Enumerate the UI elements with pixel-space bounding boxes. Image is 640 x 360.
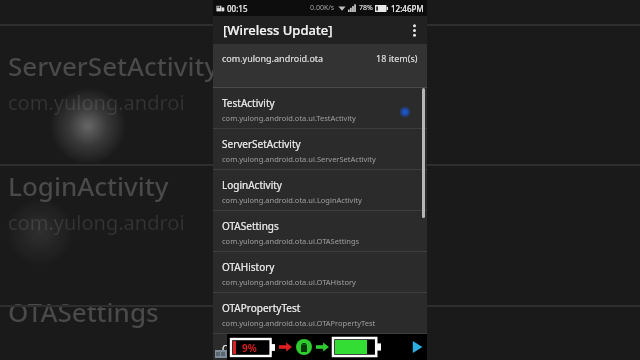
staticText: 00:15	[227, 3, 248, 14]
staticText: TestActivity	[222, 96, 275, 110]
staticText: OTASettings	[8, 294, 159, 329]
staticText: 9%	[242, 341, 257, 354]
staticText: OTAUpdateActivity	[222, 342, 309, 356]
staticText: com.yulong.android.ota.ui.ServerSetActiv…	[222, 154, 376, 164]
button[interactable]: OTASettings	[213, 211, 427, 251]
button[interactable]: OTAHistory	[213, 252, 427, 292]
staticText: 0.00K/s	[310, 3, 335, 13]
button[interactable]: 9%	[227, 334, 427, 360]
staticText: 12:46PM	[391, 3, 424, 14]
staticText: 18 item(s)	[376, 52, 418, 64]
button[interactable]: TestActivity	[213, 88, 427, 128]
staticText: 78%	[359, 3, 373, 13]
staticText: com.yulong.android.ota.ui.OTASettings	[222, 236, 360, 246]
button[interactable]: LoginActivity	[213, 170, 427, 210]
staticText: ServerSetActivity	[222, 137, 301, 151]
other: Play	[411, 341, 423, 353]
button[interactable]: ServerSetActivity	[213, 129, 427, 169]
staticText: com.yulong.android.ota.ui.LoginActivity	[222, 195, 362, 205]
button[interactable]: com.yulong.android.ota	[213, 44, 427, 88]
button[interactable]: More options	[401, 16, 427, 44]
staticText: com.yulong.android.ota.ui.OTAUpdate	[222, 359, 357, 360]
staticText: com.yulong.android.ota	[222, 52, 324, 64]
staticText: LoginActivity	[8, 168, 169, 203]
staticText: com.yulong.androi	[8, 209, 185, 236]
staticText: com.yulong.android.ota.ui.TestActivity	[222, 113, 356, 123]
staticText: com.yulong.androi	[8, 89, 185, 116]
staticText: com.yulong.android.ota.ui.OTAPropertyTes…	[222, 318, 376, 328]
staticText: [Wireless Update]	[223, 21, 333, 39]
staticText: OTASettings	[222, 219, 279, 233]
staticText: com.yulong.android.ota.ui.OTAHistory	[222, 277, 356, 287]
staticText: LoginActivity	[222, 178, 282, 192]
staticText: OTAPropertyTest	[222, 301, 301, 315]
button[interactable]: OTAPropertyTest	[213, 293, 427, 333]
button[interactable]: OTAUpdateActivity	[213, 334, 427, 360]
staticText: ServerSetActivity	[8, 48, 219, 83]
staticText: OTAHistory	[222, 260, 275, 274]
